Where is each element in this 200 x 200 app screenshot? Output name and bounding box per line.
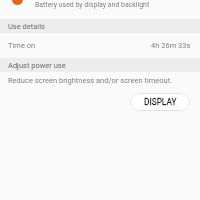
- staticText: DISPLAY: [144, 97, 177, 107]
- staticText: Time on: [8, 41, 36, 50]
- staticText: 4h 26m 33s: [151, 41, 191, 50]
- button[interactable]: Display battery usage: [0, 0, 200, 14]
- staticText: Adjust power use: [8, 61, 66, 70]
- button[interactable]: DISPLAY: [130, 93, 190, 111]
- button[interactable]: Time on: [0, 38, 200, 52]
- staticText: Battery used by display and backlight: [35, 1, 150, 9]
- staticText: Use details: [8, 22, 45, 31]
- other: Display battery usage: [12, 0, 23, 5]
- staticText: Reduce screen brightness and/or screen t…: [8, 76, 173, 85]
